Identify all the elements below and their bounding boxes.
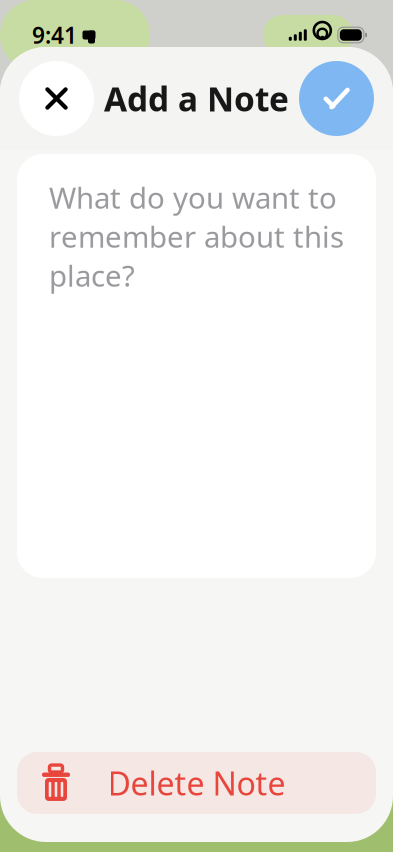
staticText: Delete Note xyxy=(107,762,285,804)
staticText: Add a Note xyxy=(104,76,289,121)
staticText: 9:41 xyxy=(32,20,77,50)
staticText: asar xyxy=(0,123,64,164)
staticText: mi xyxy=(0,164,38,204)
button[interactable]: Save note xyxy=(299,61,374,136)
button[interactable]: Close xyxy=(19,61,94,136)
staticText: What do you want to remember about this … xyxy=(49,178,344,295)
button[interactable]: Delete Note xyxy=(0,752,393,814)
